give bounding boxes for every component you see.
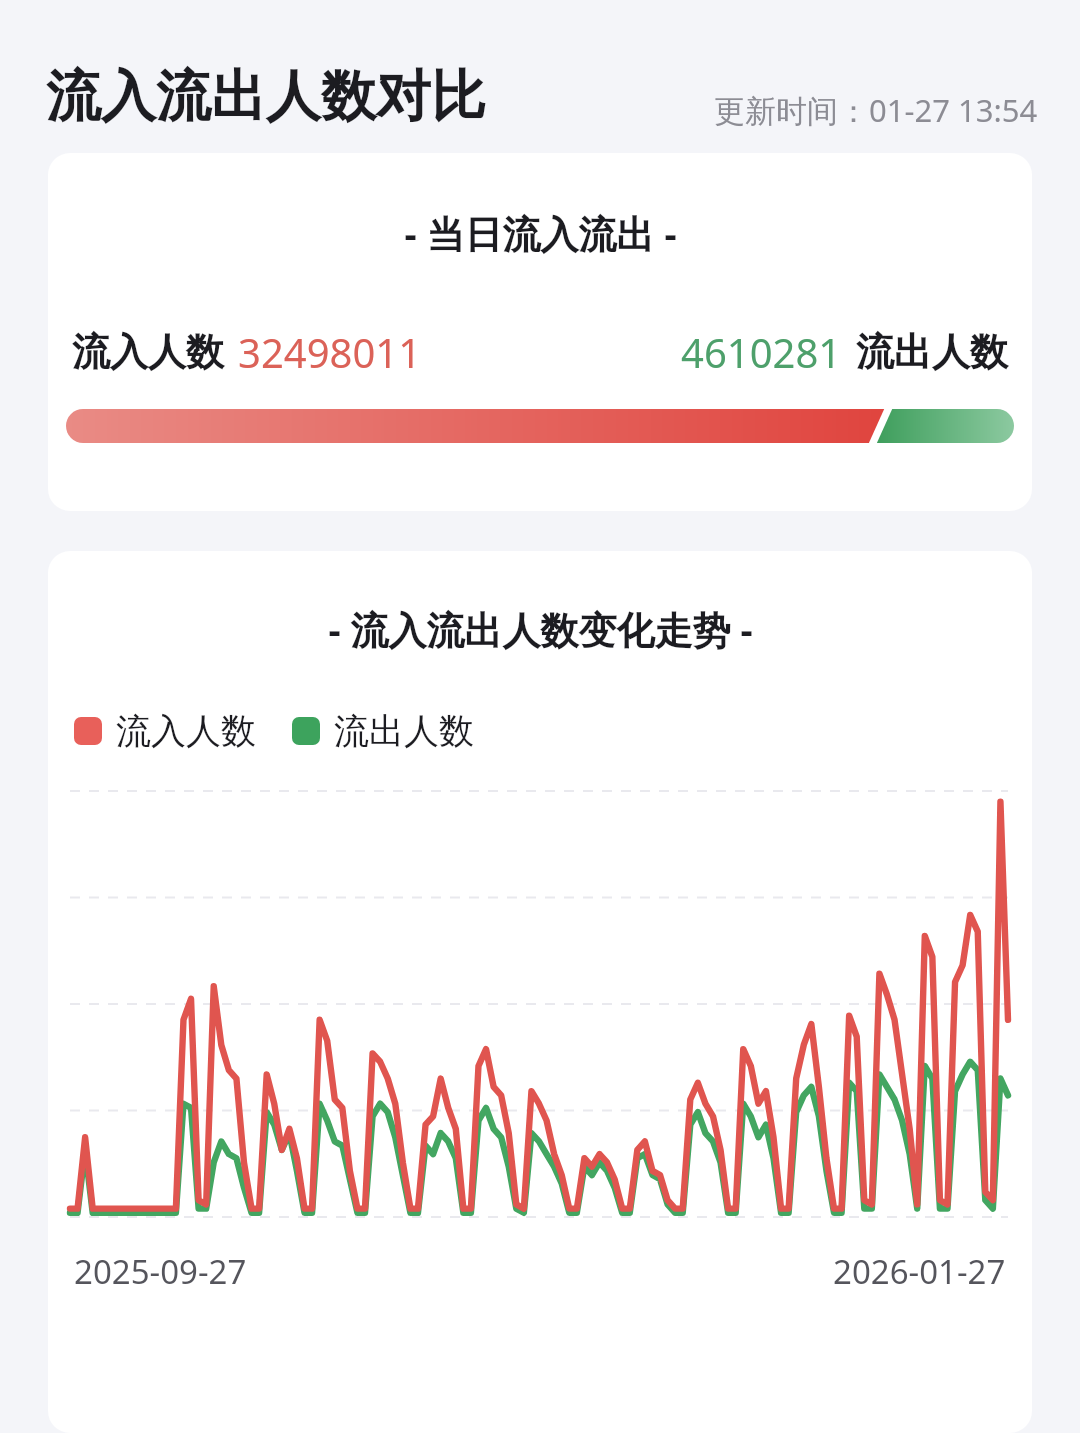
staticText: 2025-09-27 <box>74 1249 247 1294</box>
staticText: 流入流出人数对比 <box>46 62 486 131</box>
staticText: 更新时间：01-27 13:54 <box>714 89 1038 131</box>
button[interactable]: - 流入流出人数变化走势 - <box>48 551 1032 1433</box>
staticText: 流入人数 <box>116 709 256 753</box>
staticText: 流出人数 <box>334 709 474 753</box>
staticText: 32498011 <box>238 325 422 379</box>
staticText: 流出人数 <box>856 328 1008 376</box>
staticText: - 当日流入流出 - <box>404 207 677 259</box>
staticText: 流入人数 <box>72 328 224 376</box>
button[interactable]: - 当日流入流出 - <box>48 153 1032 511</box>
staticText: 4610281 <box>681 325 842 379</box>
staticText: 2026-01-27 <box>833 1249 1006 1294</box>
staticText: - 流入流出人数变化走势 - <box>328 603 753 655</box>
